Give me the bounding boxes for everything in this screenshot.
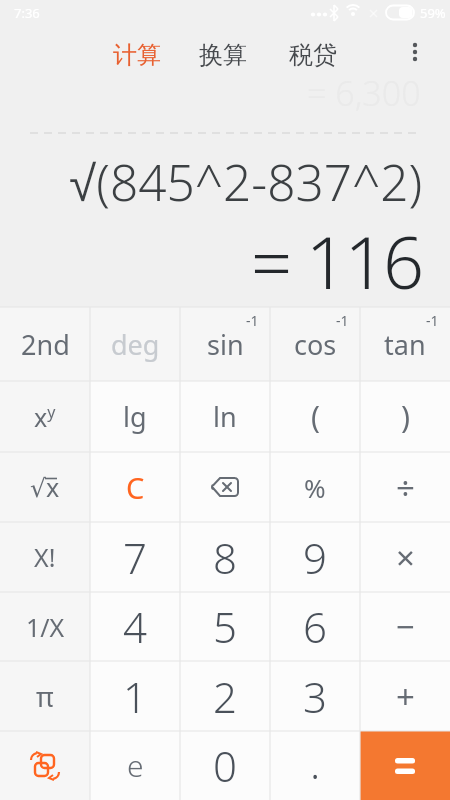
staticText: . xyxy=(310,734,321,791)
button[interactable]: × xyxy=(360,522,450,592)
button[interactable]: ( xyxy=(270,381,360,452)
staticText: ) xyxy=(401,396,410,437)
staticText: % xyxy=(304,470,326,505)
button[interactable]: xy xyxy=(0,381,90,452)
staticText: ( xyxy=(311,396,320,437)
staticText: lg xyxy=(123,398,147,435)
button[interactable]: 5 xyxy=(180,592,270,661)
staticText: × xyxy=(396,535,415,580)
button[interactable]: 3 xyxy=(270,661,360,731)
button[interactable]: 6 xyxy=(270,592,360,661)
staticText: 59% xyxy=(420,4,446,22)
staticText: -1 xyxy=(426,311,439,330)
staticText: 3 xyxy=(303,668,327,725)
button[interactable]: 计算 xyxy=(113,40,161,70)
button[interactable]: 7 xyxy=(90,522,180,592)
button[interactable]: − xyxy=(360,592,450,661)
button[interactable]: lg xyxy=(90,381,180,452)
staticText: 9 xyxy=(303,529,327,586)
button[interactable]: deg xyxy=(90,307,180,381)
staticText: ÷ xyxy=(396,465,415,510)
button[interactable]: sin xyxy=(180,307,270,381)
button[interactable]: 9 xyxy=(270,522,360,592)
staticText: sin xyxy=(207,326,244,363)
button[interactable]: ln xyxy=(180,381,270,452)
button[interactable]: C xyxy=(90,452,180,522)
staticText: xy xyxy=(34,400,56,434)
button[interactable]: 税贷 xyxy=(289,40,337,70)
staticText: 2 xyxy=(213,668,237,725)
button[interactable]: tan xyxy=(360,307,450,381)
button[interactable]: ÷ xyxy=(360,452,450,522)
staticText: 5 xyxy=(213,598,237,655)
button[interactable]: 0 xyxy=(180,731,270,800)
staticText: 8 xyxy=(213,529,237,586)
button[interactable]: 1 xyxy=(90,661,180,731)
staticText: cos xyxy=(294,326,337,363)
staticText: -1 xyxy=(246,311,259,330)
button[interactable] xyxy=(360,731,450,800)
button[interactable]: √x xyxy=(0,452,90,522)
staticText: 1 xyxy=(123,668,147,725)
button[interactable]: cos xyxy=(270,307,360,381)
staticText: √x xyxy=(30,470,60,504)
staticText: 0 xyxy=(213,737,237,794)
staticText: = 116 xyxy=(251,212,422,310)
button[interactable] xyxy=(403,40,427,64)
staticText: + xyxy=(396,674,415,719)
button[interactable]: π xyxy=(0,661,90,731)
staticText: -1 xyxy=(336,311,349,330)
staticText: ln xyxy=(213,398,237,435)
button[interactable] xyxy=(0,731,90,800)
button[interactable] xyxy=(180,452,270,522)
staticText: π xyxy=(36,678,54,715)
staticText: 2nd xyxy=(21,326,70,363)
button[interactable]: . xyxy=(270,731,360,800)
staticText: 7:36 xyxy=(14,4,40,22)
button[interactable]: + xyxy=(360,661,450,731)
button[interactable]: 4 xyxy=(90,592,180,661)
button[interactable]: 2 xyxy=(180,661,270,731)
staticText: C xyxy=(126,468,145,507)
staticText: 计算 xyxy=(113,40,161,70)
staticText: deg xyxy=(111,326,160,363)
button[interactable]: e xyxy=(90,731,180,800)
button[interactable]: % xyxy=(270,452,360,522)
staticText: 税贷 xyxy=(289,40,337,70)
staticText: 1/X xyxy=(26,610,65,644)
button[interactable]: 2nd xyxy=(0,307,90,381)
staticText: X! xyxy=(34,540,56,574)
button[interactable]: X! xyxy=(0,522,90,592)
button[interactable]: 换算 xyxy=(199,40,247,70)
button[interactable]: 8 xyxy=(180,522,270,592)
staticText: √(845^2-837^2) xyxy=(69,148,423,215)
staticText: e xyxy=(127,745,144,786)
staticText: 换算 xyxy=(199,40,247,70)
staticText: tan xyxy=(384,326,426,363)
button[interactable]: 1/X xyxy=(0,592,90,661)
staticText: − xyxy=(396,604,415,649)
button[interactable]: ) xyxy=(360,381,450,452)
staticText: 7 xyxy=(123,529,147,586)
staticText: 4 xyxy=(123,598,147,655)
staticText: 6 xyxy=(303,598,327,655)
